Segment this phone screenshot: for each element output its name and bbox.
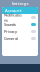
staticText: Notifications xyxy=(4,12,22,23)
staticText: Sounds xyxy=(4,22,16,27)
staticText: General xyxy=(4,36,18,41)
button[interactable]: General xyxy=(2,35,38,42)
button[interactable]: Privacy xyxy=(2,28,38,35)
button[interactable]: Notifications xyxy=(2,14,38,21)
button[interactable]: Sounds xyxy=(2,21,38,28)
staticText: Settings xyxy=(11,1,28,6)
staticText: Account xyxy=(5,8,22,13)
staticText: Privacy xyxy=(4,29,17,34)
